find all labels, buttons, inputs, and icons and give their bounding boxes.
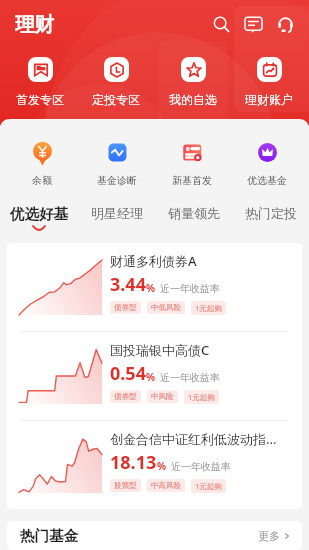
staticText: 余额 <box>32 174 52 187</box>
staticText: 近一年收益率 <box>160 371 220 384</box>
button[interactable]: 理财账户 <box>233 48 305 106</box>
button[interactable]: 优选基金 <box>234 141 300 187</box>
staticText: 销量领先 <box>168 205 220 221</box>
staticText: 首发专区 <box>16 92 64 106</box>
staticText: 热门定投 <box>245 205 297 221</box>
staticText: 新基首发 <box>172 174 212 187</box>
staticText: 债券型 <box>114 303 137 312</box>
staticText: 3.44 <box>110 272 146 297</box>
staticText: 明星经理 <box>91 205 143 221</box>
staticText: 理财 <box>15 12 54 37</box>
staticText: 优选好基 <box>10 205 68 223</box>
button[interactable]: 热门基金 <box>7 521 302 550</box>
staticText: 18.13 <box>110 450 157 475</box>
staticText: 更多 <box>258 529 280 543</box>
button[interactable]: 余额 <box>9 141 75 187</box>
staticText: 近一年收益率 <box>171 460 231 473</box>
staticText: 1元起购 <box>188 392 215 402</box>
button[interactable]: 热门定投 <box>232 205 309 221</box>
staticText: 定投专区 <box>92 92 140 106</box>
staticText: 股票型 <box>114 481 137 490</box>
staticText: 基金诊断 <box>97 174 137 187</box>
staticText: 债券型 <box>114 392 137 401</box>
button[interactable]: 财通多利债券A <box>7 243 302 331</box>
button[interactable]: Search <box>205 8 237 40</box>
staticText: 1元起购 <box>195 481 222 491</box>
button[interactable]: 首发专区 <box>4 48 76 106</box>
staticText: % <box>146 281 156 295</box>
staticText: 近一年收益率 <box>160 282 220 295</box>
staticText: 财通多利债券A <box>110 252 197 270</box>
staticText: 国投瑞银中高债C <box>110 341 210 359</box>
button[interactable]: Customer service <box>269 8 301 40</box>
button[interactable]: 新基首发 <box>159 141 225 187</box>
staticText: % <box>146 370 156 384</box>
staticText: 优选基金 <box>247 174 287 187</box>
button[interactable]: 优选好基 <box>0 205 78 230</box>
staticText: 中风险 <box>151 392 174 401</box>
button[interactable]: 定投专区 <box>80 48 152 106</box>
button[interactable]: 销量领先 <box>155 205 232 221</box>
staticText: % <box>157 459 167 473</box>
button[interactable]: 基金诊断 <box>84 141 150 187</box>
staticText: 中低风险 <box>151 303 181 312</box>
staticText: 中高风险 <box>151 481 181 490</box>
button[interactable]: 我的自选 <box>157 48 229 106</box>
button[interactable]: 国投瑞银中高债C <box>7 332 302 420</box>
staticText: 理财账户 <box>245 92 293 106</box>
staticText: 0.54 <box>110 361 146 386</box>
staticText: 我的自选 <box>169 92 217 106</box>
staticText: 创金合信中证红利低波动指… <box>110 430 277 448</box>
staticText: 热门基金 <box>20 527 78 545</box>
button[interactable]: 明星经理 <box>78 205 155 221</box>
button[interactable]: Messages <box>237 8 269 40</box>
button[interactable]: 创金合信中证红利低波动指… <box>7 421 302 509</box>
staticText: 1元起购 <box>195 303 222 313</box>
